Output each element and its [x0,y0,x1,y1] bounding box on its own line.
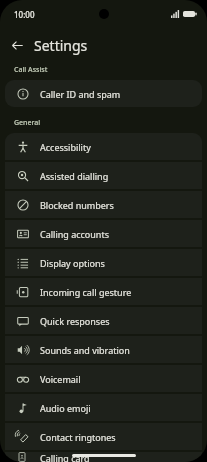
button[interactable]: Back [6,34,28,56]
staticText: Audio emoji [40,402,91,414]
staticText: Assisted dialling [40,170,109,182]
staticText: Quick responses [40,315,110,327]
button[interactable]: Accessibility [5,133,202,160]
staticText: Contact ringtones [40,431,116,443]
button[interactable]: Display options [5,249,202,276]
button[interactable]: Blocked numbers [5,191,202,218]
button[interactable]: Audio emoji [5,394,202,421]
button[interactable]: Assisted dialling [5,162,202,189]
staticText: 10:00 [14,9,35,20]
staticText: Caller ID and spam [40,88,121,100]
button[interactable]: Calling card [5,452,202,462]
staticText: Display options [40,257,105,269]
button[interactable]: Sounds and vibration [5,336,202,363]
staticText: Sounds and vibration [40,344,130,356]
staticText: Accessibility [40,141,91,153]
staticText: Calling card [40,452,90,462]
staticText: Calling accounts [40,228,109,240]
button[interactable]: Calling accounts [5,220,202,247]
staticText: Incoming call gesture [40,286,132,298]
button[interactable]: Quick responses [5,307,202,334]
button[interactable]: Incoming call gesture [5,278,202,305]
button[interactable]: Contact ringtones [5,423,202,450]
staticText: Voicemail [40,373,81,385]
staticText: General [14,118,41,128]
staticText: Call Assist [14,65,48,75]
button[interactable]: Caller ID and spam [5,80,202,107]
button[interactable]: Voicemail [5,365,202,392]
staticText: Blocked numbers [40,199,114,211]
staticText: Settings [34,36,88,55]
